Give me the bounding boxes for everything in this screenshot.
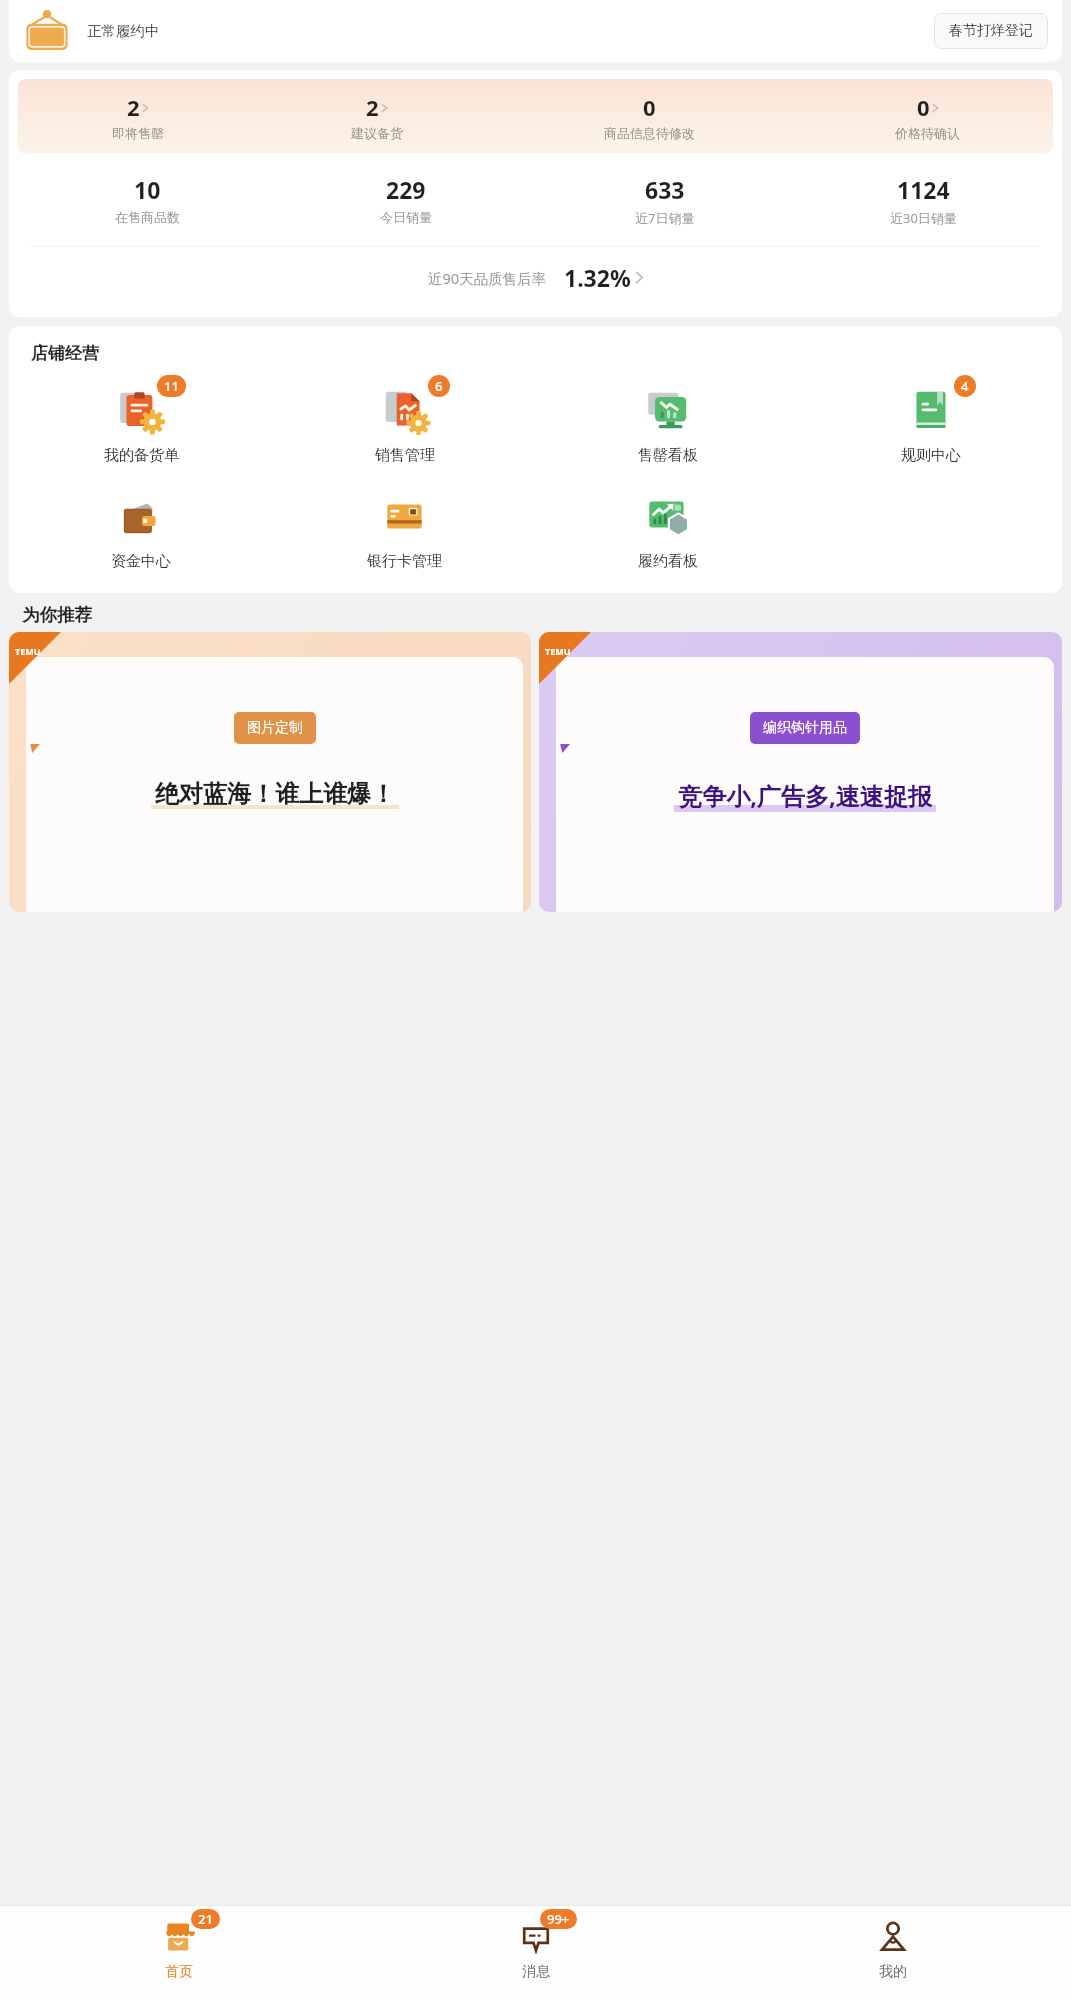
button[interactable]: 2	[18, 92, 257, 141]
staticText: 规则中心	[901, 446, 961, 465]
button[interactable]: 10	[18, 174, 276, 225]
staticText: 21	[198, 1910, 213, 1928]
staticText: 竞争小,广告多,速速捉报	[678, 779, 932, 812]
staticText: 2	[366, 92, 379, 122]
button[interactable]: 履约看板	[536, 488, 799, 573]
staticText: 春节打烊登记	[949, 22, 1033, 40]
staticText: 今日销量	[380, 209, 432, 225]
staticText: 4	[961, 377, 969, 395]
button[interactable]: 6	[273, 382, 536, 467]
staticText: 近7日销量	[635, 209, 695, 227]
button[interactable]: 4	[799, 382, 1062, 467]
button[interactable]: 0	[802, 92, 1053, 141]
staticText: 消息	[522, 1963, 550, 1981]
button[interactable]: 11	[9, 382, 273, 467]
button[interactable]: 21	[0, 1906, 357, 2000]
staticText: 在售商品数	[115, 209, 180, 225]
staticText: 229	[386, 174, 426, 205]
staticText: 银行卡管理	[367, 552, 442, 571]
staticText: 6	[435, 377, 443, 395]
staticText: 我的备货单	[104, 446, 179, 465]
staticText: 1124	[897, 174, 950, 205]
button[interactable]: 99+	[357, 1906, 714, 2000]
staticText: TEMU	[545, 645, 571, 657]
staticText: 正常履约中	[87, 22, 160, 40]
button[interactable]: 1124	[794, 174, 1053, 227]
button[interactable]: 229	[276, 174, 535, 225]
button[interactable]: 售罄看板	[536, 382, 799, 467]
staticText: 近30日销量	[890, 209, 957, 227]
button[interactable]: 图片定制	[9, 632, 531, 912]
staticText: 即将售罄	[112, 125, 164, 141]
staticText: 2	[127, 92, 140, 122]
staticText: TEMU	[15, 645, 41, 657]
staticText: 建议备货	[351, 125, 403, 141]
staticText: 销售管理	[375, 446, 435, 465]
staticText: 99+	[547, 1910, 570, 1928]
staticText: 首页	[165, 1963, 193, 1981]
staticText: 为你推荐	[22, 604, 92, 626]
staticText: 0	[917, 92, 930, 122]
staticText: 1.32%	[564, 262, 631, 293]
staticText: 图片定制	[247, 719, 303, 737]
staticText: 11	[164, 377, 179, 395]
button[interactable]: 我的	[714, 1906, 1071, 2000]
staticText: 近90天品质售后率	[428, 268, 547, 288]
staticText: 633	[645, 174, 685, 205]
staticText: 资金中心	[111, 552, 171, 571]
staticText: 编织钩针用品	[763, 719, 847, 737]
staticText: 售罄看板	[638, 446, 698, 465]
button[interactable]: 2	[257, 92, 496, 141]
staticText: 商品信息待修改	[604, 125, 695, 141]
staticText: 价格待确认	[895, 125, 960, 141]
staticText: 绝对蓝海！谁上谁爆！	[155, 779, 395, 809]
button[interactable]: 633	[535, 174, 794, 227]
staticText: 我的	[879, 1963, 907, 1981]
staticText: 店铺经营	[31, 343, 99, 364]
button[interactable]: 银行卡管理	[273, 488, 536, 573]
button[interactable]: 0	[496, 92, 802, 141]
button[interactable]: 编织钩针用品	[539, 632, 1062, 912]
staticText: 0	[643, 92, 656, 122]
button[interactable]: 资金中心	[9, 488, 273, 573]
button[interactable]: 春节打烊登记	[934, 13, 1048, 49]
staticText: 履约看板	[638, 552, 698, 571]
staticText: 10	[134, 174, 161, 205]
button[interactable]: 近90天品质售后率	[18, 247, 1053, 308]
